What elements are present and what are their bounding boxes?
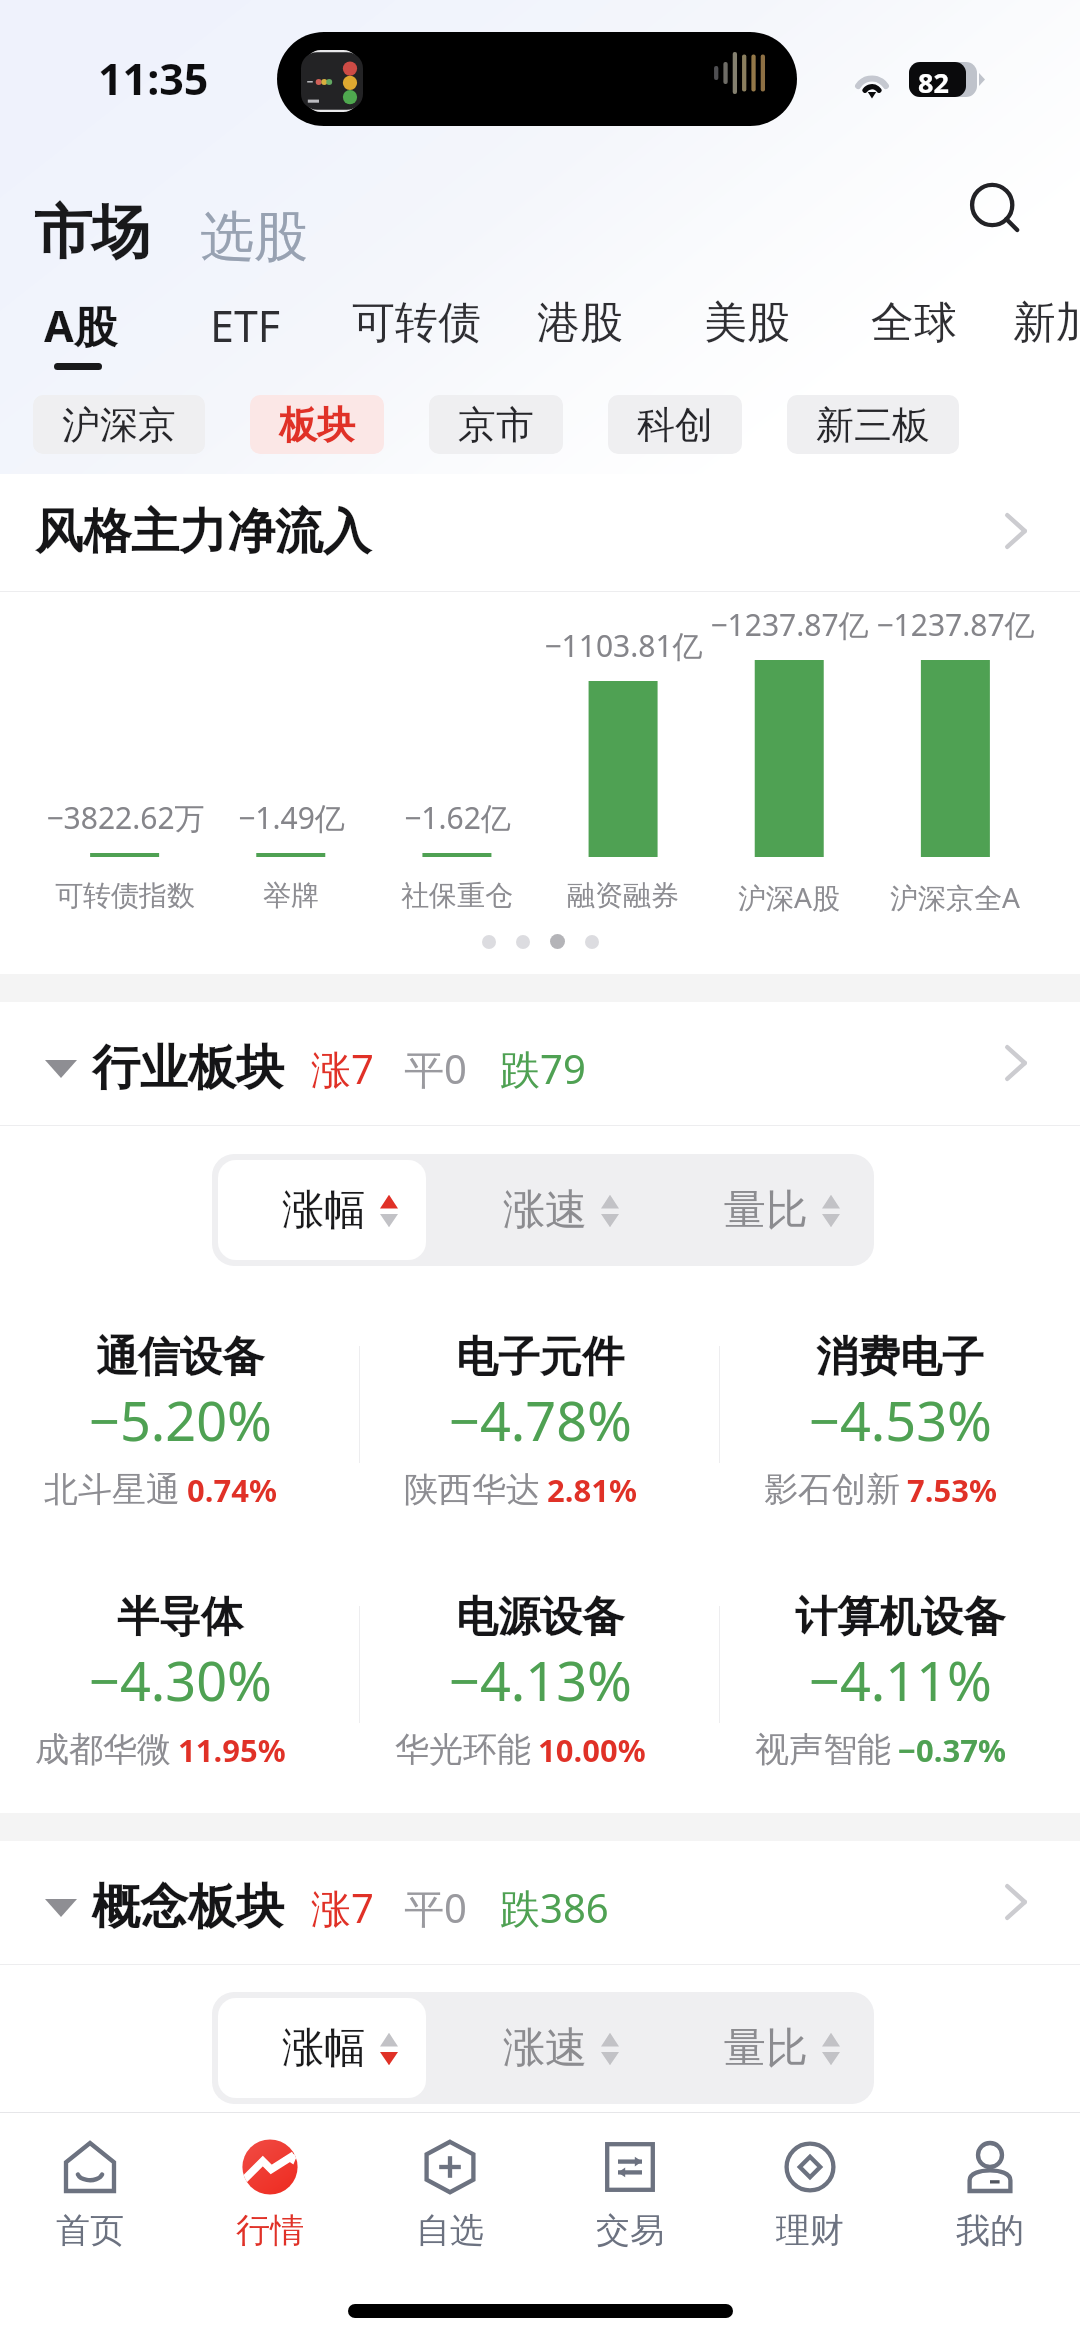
- button[interactable]: [0, 474, 1080, 591]
- staticText: 电子元件: [456, 1331, 624, 1384]
- staticText: −1237.87亿: [876, 604, 1035, 645]
- staticText: 82: [918, 64, 949, 99]
- staticText: 北斗星通: [44, 1468, 180, 1511]
- staticText: 0.74%: [187, 1469, 277, 1511]
- button[interactable]: 自选: [360, 2137, 540, 2252]
- staticText: 量比: [724, 2022, 808, 2075]
- staticText: 港股: [537, 296, 623, 350]
- staticText: 首页: [56, 2209, 124, 2252]
- staticText: −4.30%: [89, 1643, 272, 1717]
- staticText: 自选: [416, 2209, 484, 2252]
- staticText: −1.62亿: [404, 797, 511, 838]
- staticText: 涨7: [311, 1041, 374, 1096]
- staticText: −1237.87亿: [710, 604, 869, 645]
- button[interactable]: 电子元件: [360, 1320, 720, 1532]
- staticText: 11.95%: [178, 1729, 286, 1771]
- button[interactable]: 交易: [540, 2137, 720, 2252]
- button[interactable]: 电源设备: [360, 1580, 720, 1792]
- button[interactable]: 选股: [200, 203, 308, 271]
- staticText: 涨幅: [282, 1184, 366, 1237]
- button[interactable]: 可转债: [352, 296, 481, 350]
- staticText: −0.37%: [898, 1729, 1006, 1771]
- staticText: 新三板: [816, 401, 930, 449]
- button[interactable]: 板块: [250, 395, 384, 454]
- button[interactable]: 行情: [180, 2137, 360, 2252]
- staticText: 半导体: [117, 1591, 243, 1644]
- button[interactable]: 量比: [659, 1160, 868, 1260]
- button[interactable]: 我的: [900, 2137, 1080, 2252]
- staticText: 概念板块: [92, 1877, 284, 1937]
- staticText: 涨7: [311, 1880, 374, 1935]
- staticText: 美股: [704, 296, 790, 350]
- button[interactable]: 科创: [608, 395, 742, 454]
- button[interactable]: 理财: [720, 2137, 900, 2252]
- staticText: 11:35: [98, 49, 209, 108]
- staticText: 沪深京: [62, 401, 176, 449]
- button[interactable]: [0, 1841, 1080, 1964]
- staticText: 视声智能: [755, 1728, 891, 1771]
- staticText: 京市: [458, 401, 534, 449]
- staticText: 全球: [871, 296, 957, 350]
- staticText: 板块: [279, 401, 355, 449]
- button[interactable]: 消费电子: [720, 1320, 1080, 1532]
- button[interactable]: A股: [44, 296, 117, 370]
- staticText: 10.00%: [538, 1729, 646, 1771]
- button[interactable]: 首页: [0, 2137, 180, 2252]
- staticText: 跌386: [500, 1880, 609, 1935]
- staticText: 影石创新: [764, 1468, 900, 1511]
- button[interactable]: 全球: [871, 296, 957, 350]
- staticText: 平0: [404, 1041, 467, 1096]
- button[interactable]: 涨幅: [218, 1998, 426, 2098]
- staticText: −3822.62万: [46, 797, 205, 838]
- button[interactable]: 港股: [537, 296, 623, 350]
- button[interactable]: 涨速: [438, 1998, 647, 2098]
- button[interactable]: Search: [952, 166, 1042, 256]
- staticText: 风格主力净流入: [35, 502, 371, 562]
- staticText: 沪深京全A: [890, 878, 1020, 916]
- staticText: −4.13%: [449, 1643, 632, 1717]
- staticText: −4.11%: [809, 1643, 992, 1717]
- button[interactable]: [0, 1002, 1080, 1125]
- button[interactable]: 通信设备: [0, 1320, 360, 1532]
- staticText: 融资融券: [567, 878, 679, 913]
- staticText: 涨幅: [282, 2022, 366, 2075]
- button[interactable]: 沪深京: [33, 395, 205, 454]
- button[interactable]: 涨幅: [218, 1160, 426, 1260]
- staticText: 可转债指数: [55, 878, 195, 913]
- staticText: −5.20%: [89, 1383, 272, 1457]
- button[interactable]: 计算机设备: [720, 1580, 1080, 1792]
- staticText: 成都华微: [35, 1728, 171, 1771]
- staticText: 可转债: [352, 296, 481, 350]
- staticText: 涨速: [503, 1184, 587, 1237]
- staticText: −1103.81亿: [544, 625, 703, 666]
- button[interactable]: 市场: [34, 196, 150, 269]
- staticText: 陕西华达: [404, 1468, 540, 1511]
- staticText: 跌79: [500, 1041, 586, 1096]
- staticText: 7.53%: [907, 1469, 997, 1511]
- staticText: 电源设备: [456, 1591, 624, 1644]
- staticText: 华光环能: [395, 1728, 531, 1771]
- staticText: 理财: [776, 2209, 844, 2252]
- button[interactable]: ETF: [210, 296, 281, 355]
- staticText: 交易: [596, 2209, 664, 2252]
- button[interactable]: 半导体: [0, 1580, 360, 1792]
- staticText: 通信设备: [96, 1331, 264, 1384]
- staticText: −4.78%: [449, 1383, 632, 1457]
- staticText: 社保重仓: [401, 878, 513, 913]
- button[interactable]: 美股: [704, 296, 790, 350]
- staticText: 2.81%: [547, 1469, 637, 1511]
- button[interactable]: 量比: [659, 1998, 868, 2098]
- staticText: 举牌: [263, 878, 319, 913]
- staticText: 沪深A股: [738, 878, 840, 916]
- staticText: 新加: [1013, 296, 1080, 350]
- staticText: −4.53%: [809, 1383, 992, 1457]
- staticText: 消费电子: [816, 1331, 984, 1384]
- staticText: 行情: [236, 2209, 304, 2252]
- staticText: −1.49亿: [238, 797, 345, 838]
- staticText: 行业板块: [92, 1038, 284, 1098]
- button[interactable]: 新三板: [787, 395, 959, 454]
- staticText: 平0: [404, 1880, 467, 1935]
- button[interactable]: 涨速: [438, 1160, 647, 1260]
- button[interactable]: 京市: [429, 395, 563, 454]
- button[interactable]: 新加: [1013, 296, 1080, 350]
